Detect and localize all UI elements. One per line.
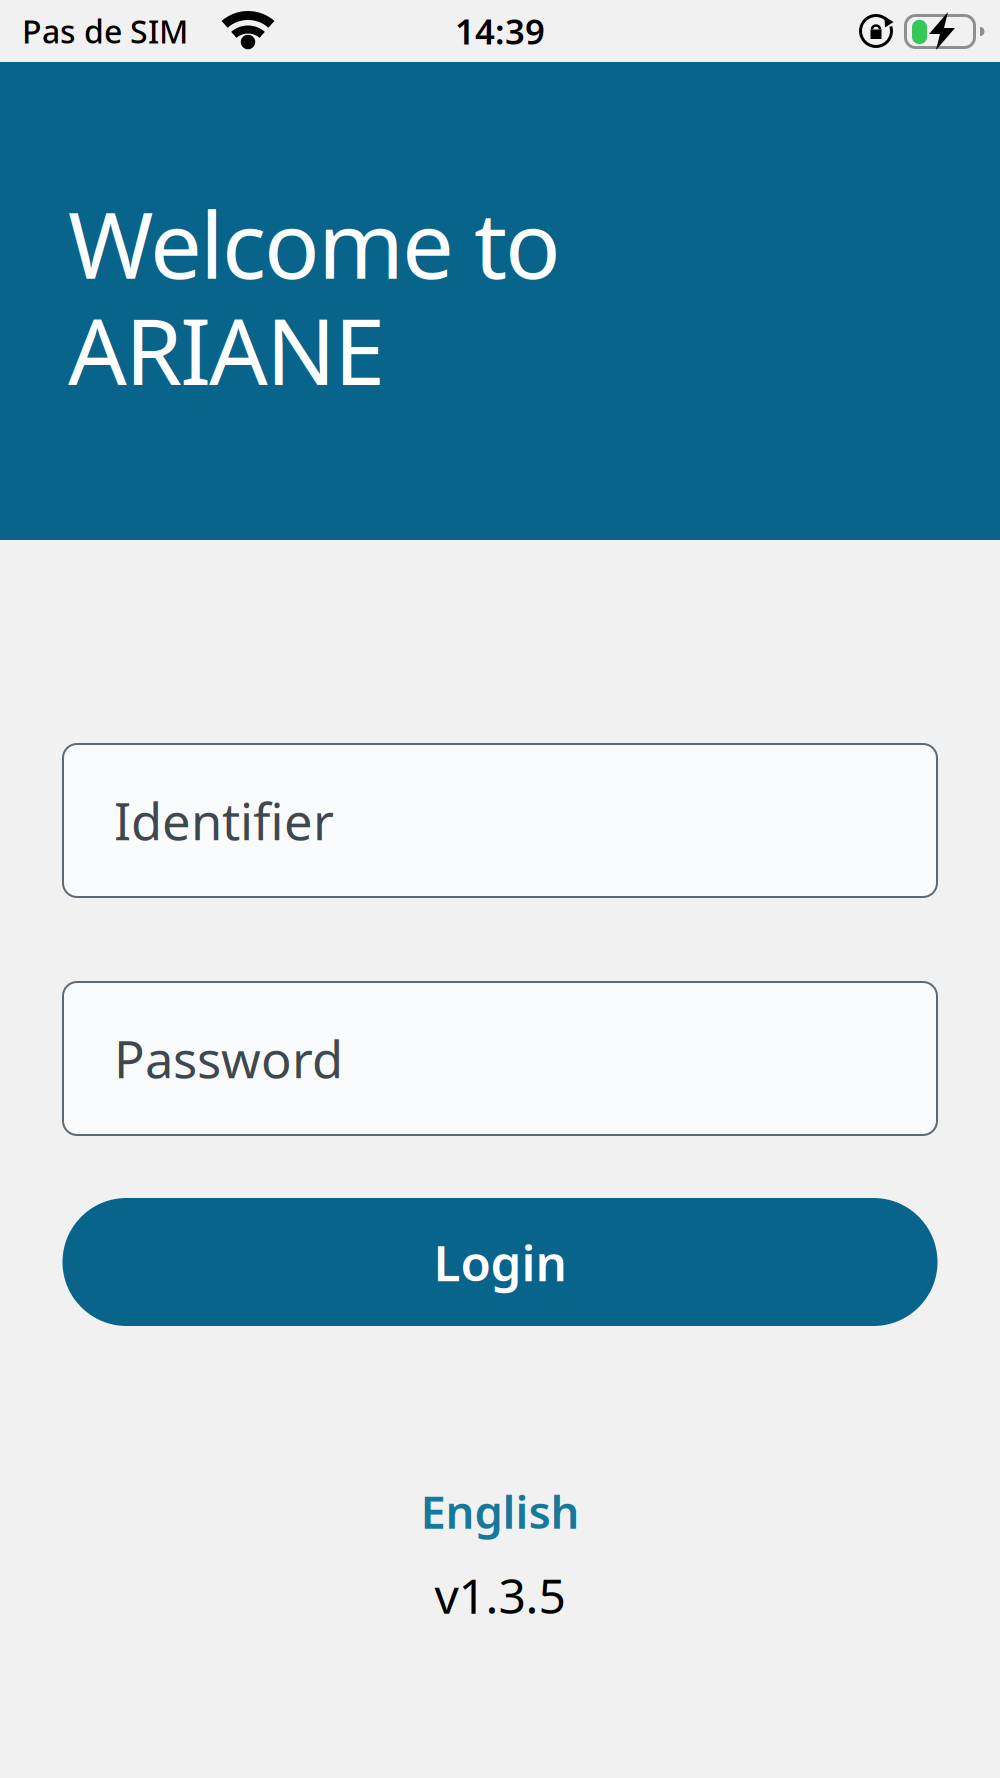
staticText: English	[420, 1481, 579, 1541]
staticText: v1.3.5	[434, 1563, 565, 1627]
staticText: Welcome to ARIANE	[68, 182, 561, 410]
staticText: Identifier	[114, 787, 334, 854]
staticText: 14:39	[455, 8, 545, 54]
button[interactable]: Password	[63, 982, 937, 1135]
staticText: Password	[114, 1025, 343, 1092]
staticText: Login	[433, 1229, 566, 1295]
button[interactable]: Identifier	[63, 744, 937, 897]
button[interactable]: Login	[62, 1198, 937, 1326]
button[interactable]: English	[420, 1481, 579, 1541]
staticText: Pas de SIM	[22, 10, 188, 52]
